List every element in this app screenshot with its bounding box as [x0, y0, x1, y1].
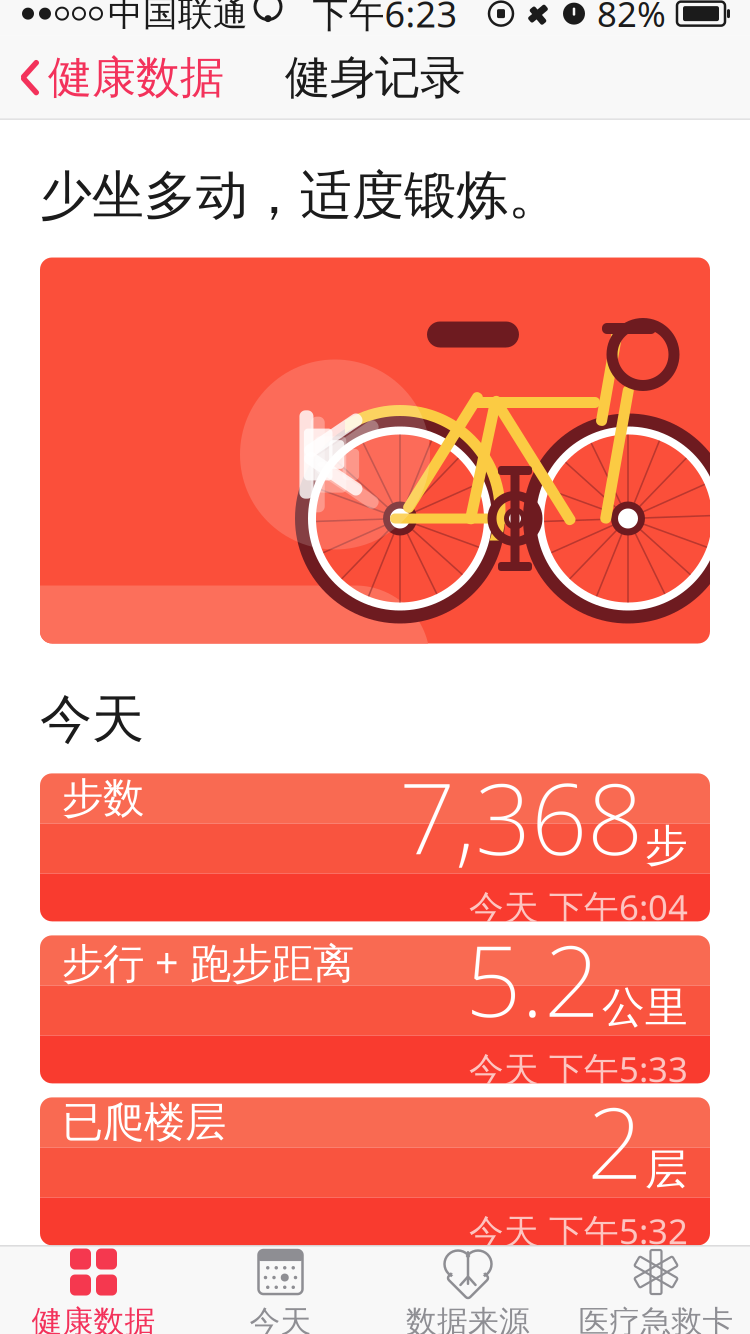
button[interactable]: 医疗急救卡	[562, 1246, 750, 1334]
staticText: 健身记录	[285, 50, 465, 105]
staticText: 少坐多动，适度锻炼。	[40, 164, 560, 227]
staticText: 今天 下午5:33	[469, 1046, 688, 1092]
staticText: 7,368	[399, 751, 643, 882]
staticText: 82%	[597, 0, 666, 37]
button[interactable]	[40, 257, 710, 643]
button[interactable]: 已爬楼层	[40, 1097, 710, 1245]
staticText: 今天 下午5:32	[469, 1208, 688, 1254]
staticText: 公里	[602, 981, 688, 1034]
button[interactable]: 今天	[187, 1246, 374, 1334]
staticText: 健康数据	[48, 51, 224, 105]
staticText: 数据来源	[406, 1303, 530, 1334]
staticText: 层	[645, 1143, 688, 1196]
staticText: 5.2	[465, 913, 600, 1044]
staticText: 步	[645, 819, 688, 872]
staticText: 医疗急救卡	[578, 1303, 733, 1334]
staticText: 今天 下午6:04	[469, 884, 688, 930]
button[interactable]: 健康数据	[0, 41, 224, 115]
staticText: 今天	[40, 687, 144, 751]
staticText: 下午6:23	[312, 0, 457, 37]
button[interactable]: 步行 + 跑步距离	[40, 935, 710, 1083]
staticText: 中国联通	[108, 0, 248, 35]
staticText: 2	[587, 1075, 643, 1206]
staticText: 已爬楼层	[62, 1097, 226, 1148]
button[interactable]: 步数	[40, 773, 710, 921]
staticText: 步数	[62, 773, 144, 824]
button[interactable]: 数据来源	[374, 1246, 562, 1334]
staticText: 今天	[249, 1303, 311, 1334]
button[interactable]: 健康数据	[0, 1246, 187, 1334]
staticText: 步行 + 跑步距离	[62, 935, 354, 990]
staticText: 健康数据	[31, 1303, 155, 1334]
